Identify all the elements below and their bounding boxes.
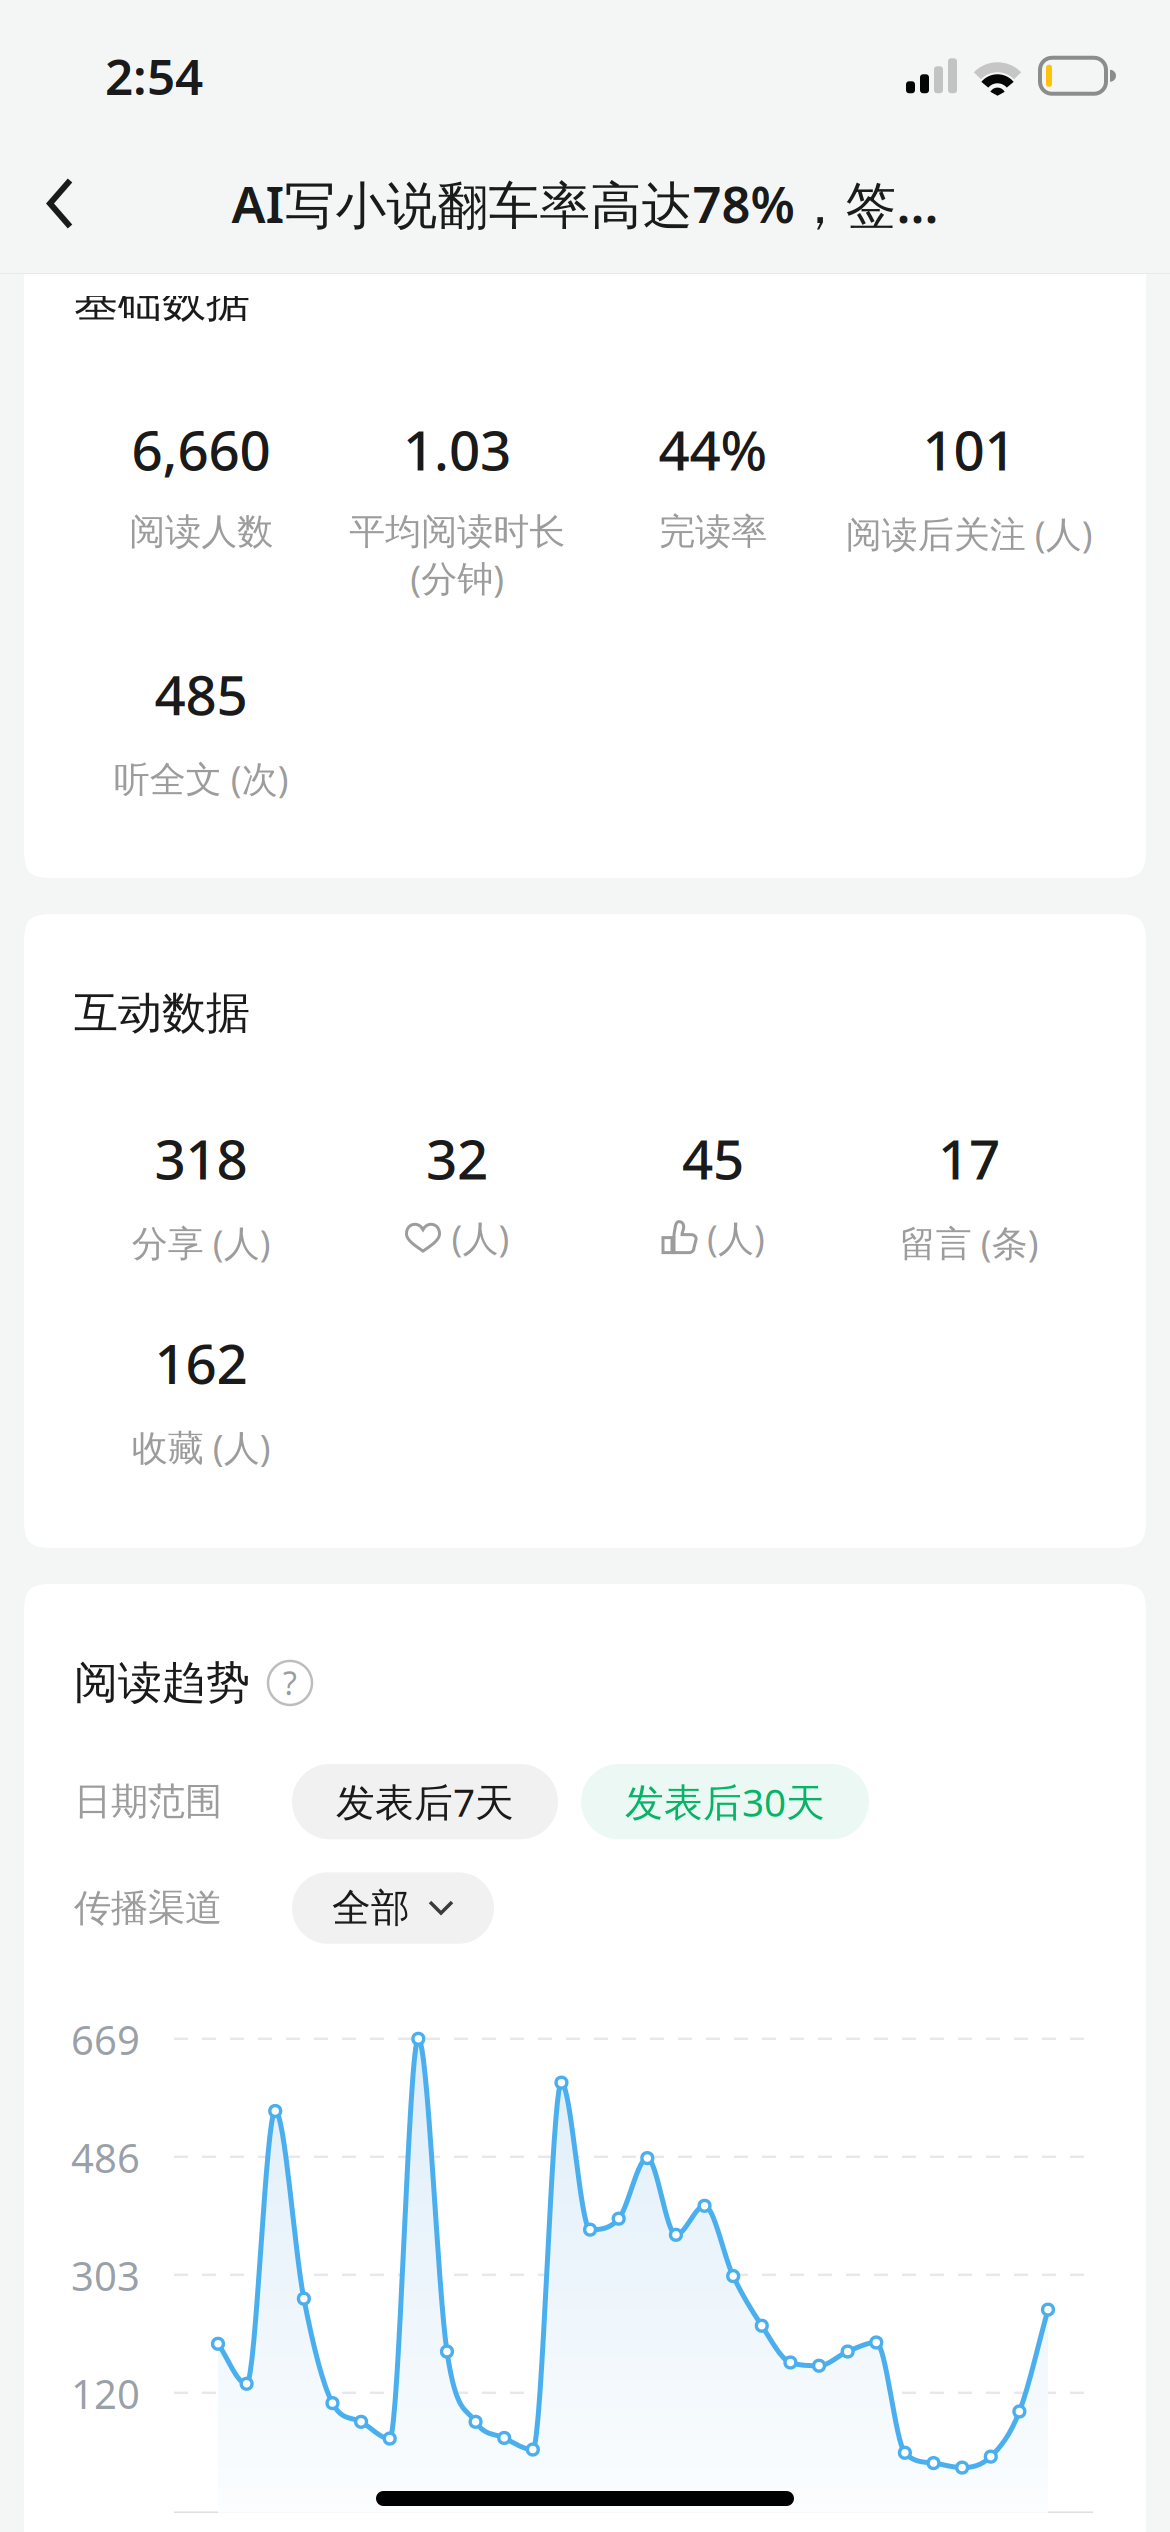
staticText: 318 <box>154 1122 247 1195</box>
staticText: 45 <box>682 1122 744 1195</box>
button[interactable]: 全部 <box>292 1872 494 1944</box>
staticText: 基础数据 <box>74 274 250 328</box>
staticText: 平均阅读时长 (分钟) <box>349 510 565 602</box>
staticText: 120 <box>71 2367 140 2420</box>
staticText: 收藏 (人) <box>131 1423 270 1471</box>
staticText: 6,660 <box>131 413 270 486</box>
staticText: 阅读后关注 (人) <box>845 510 1092 557</box>
staticText: (人) <box>707 1214 765 1261</box>
staticText: AI写小说翻车率高达78%，签… <box>231 170 938 237</box>
staticText: 669 <box>71 2013 140 2066</box>
staticText: 44% <box>658 413 767 486</box>
staticText: 完读率 <box>659 510 767 554</box>
staticText: 1.03 <box>403 413 511 486</box>
staticText: 2:54 <box>105 43 203 108</box>
staticText: 发表后30天 <box>625 1776 825 1827</box>
staticText: ? <box>283 1662 297 1704</box>
staticText: (人) <box>451 1214 509 1261</box>
staticText: 发表后7天 <box>336 1776 514 1827</box>
staticText: 阅读人数 <box>129 510 273 554</box>
staticText: 留言 (条) <box>899 1219 1038 1266</box>
staticText: 听全文 (次) <box>113 754 288 802</box>
staticText: 全部 <box>332 1884 410 1932</box>
staticText: 486 <box>71 2131 140 2184</box>
staticText: 303 <box>71 2249 140 2302</box>
button[interactable]: 返回 <box>0 146 112 260</box>
button[interactable]: 发表后30天 <box>581 1764 869 1839</box>
staticText: 日期范围 <box>74 1779 222 1825</box>
button[interactable]: 说明 <box>268 1661 312 1705</box>
staticText: 互动数据 <box>74 986 250 1040</box>
staticText: 485 <box>154 658 247 730</box>
staticText: 32 <box>426 1122 488 1195</box>
button[interactable]: 发表后7天 <box>292 1764 558 1839</box>
staticText: 分享 (人) <box>131 1219 270 1266</box>
staticText: 阅读趋势 <box>74 1656 250 1710</box>
staticText: 传播渠道 <box>74 1885 222 1931</box>
staticText: 162 <box>154 1326 247 1399</box>
staticText: 17 <box>938 1122 1000 1195</box>
staticText: 101 <box>922 413 1015 486</box>
